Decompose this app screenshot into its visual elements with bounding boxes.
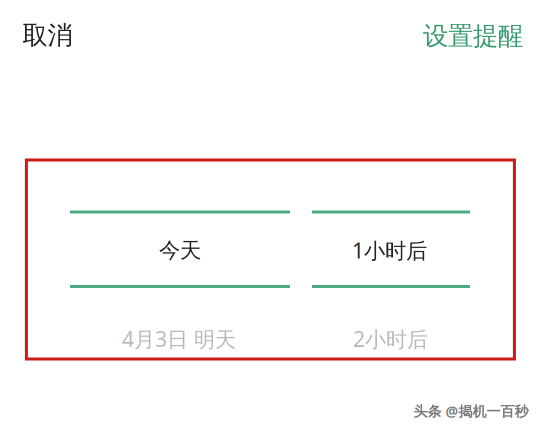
- staticText: 4月3日 明天: [122, 325, 236, 353]
- staticText: 设置提醒: [423, 20, 523, 52]
- button[interactable]: 2小时后: [312, 302, 470, 377]
- staticText: 头条 @揭机一百秒: [413, 401, 528, 421]
- staticText: 今天: [159, 237, 201, 264]
- button[interactable]: 今天: [70, 212, 290, 287]
- button[interactable]: 取消: [22, 8, 126, 62]
- staticText: 2小时后: [353, 325, 428, 353]
- button[interactable]: 1小时后: [312, 212, 470, 287]
- staticText: 取消: [22, 19, 72, 51]
- staticText: 1小时后: [352, 236, 427, 265]
- button[interactable]: 4月3日 明天: [70, 302, 290, 377]
- button[interactable]: 设置提醒: [383, 9, 523, 63]
